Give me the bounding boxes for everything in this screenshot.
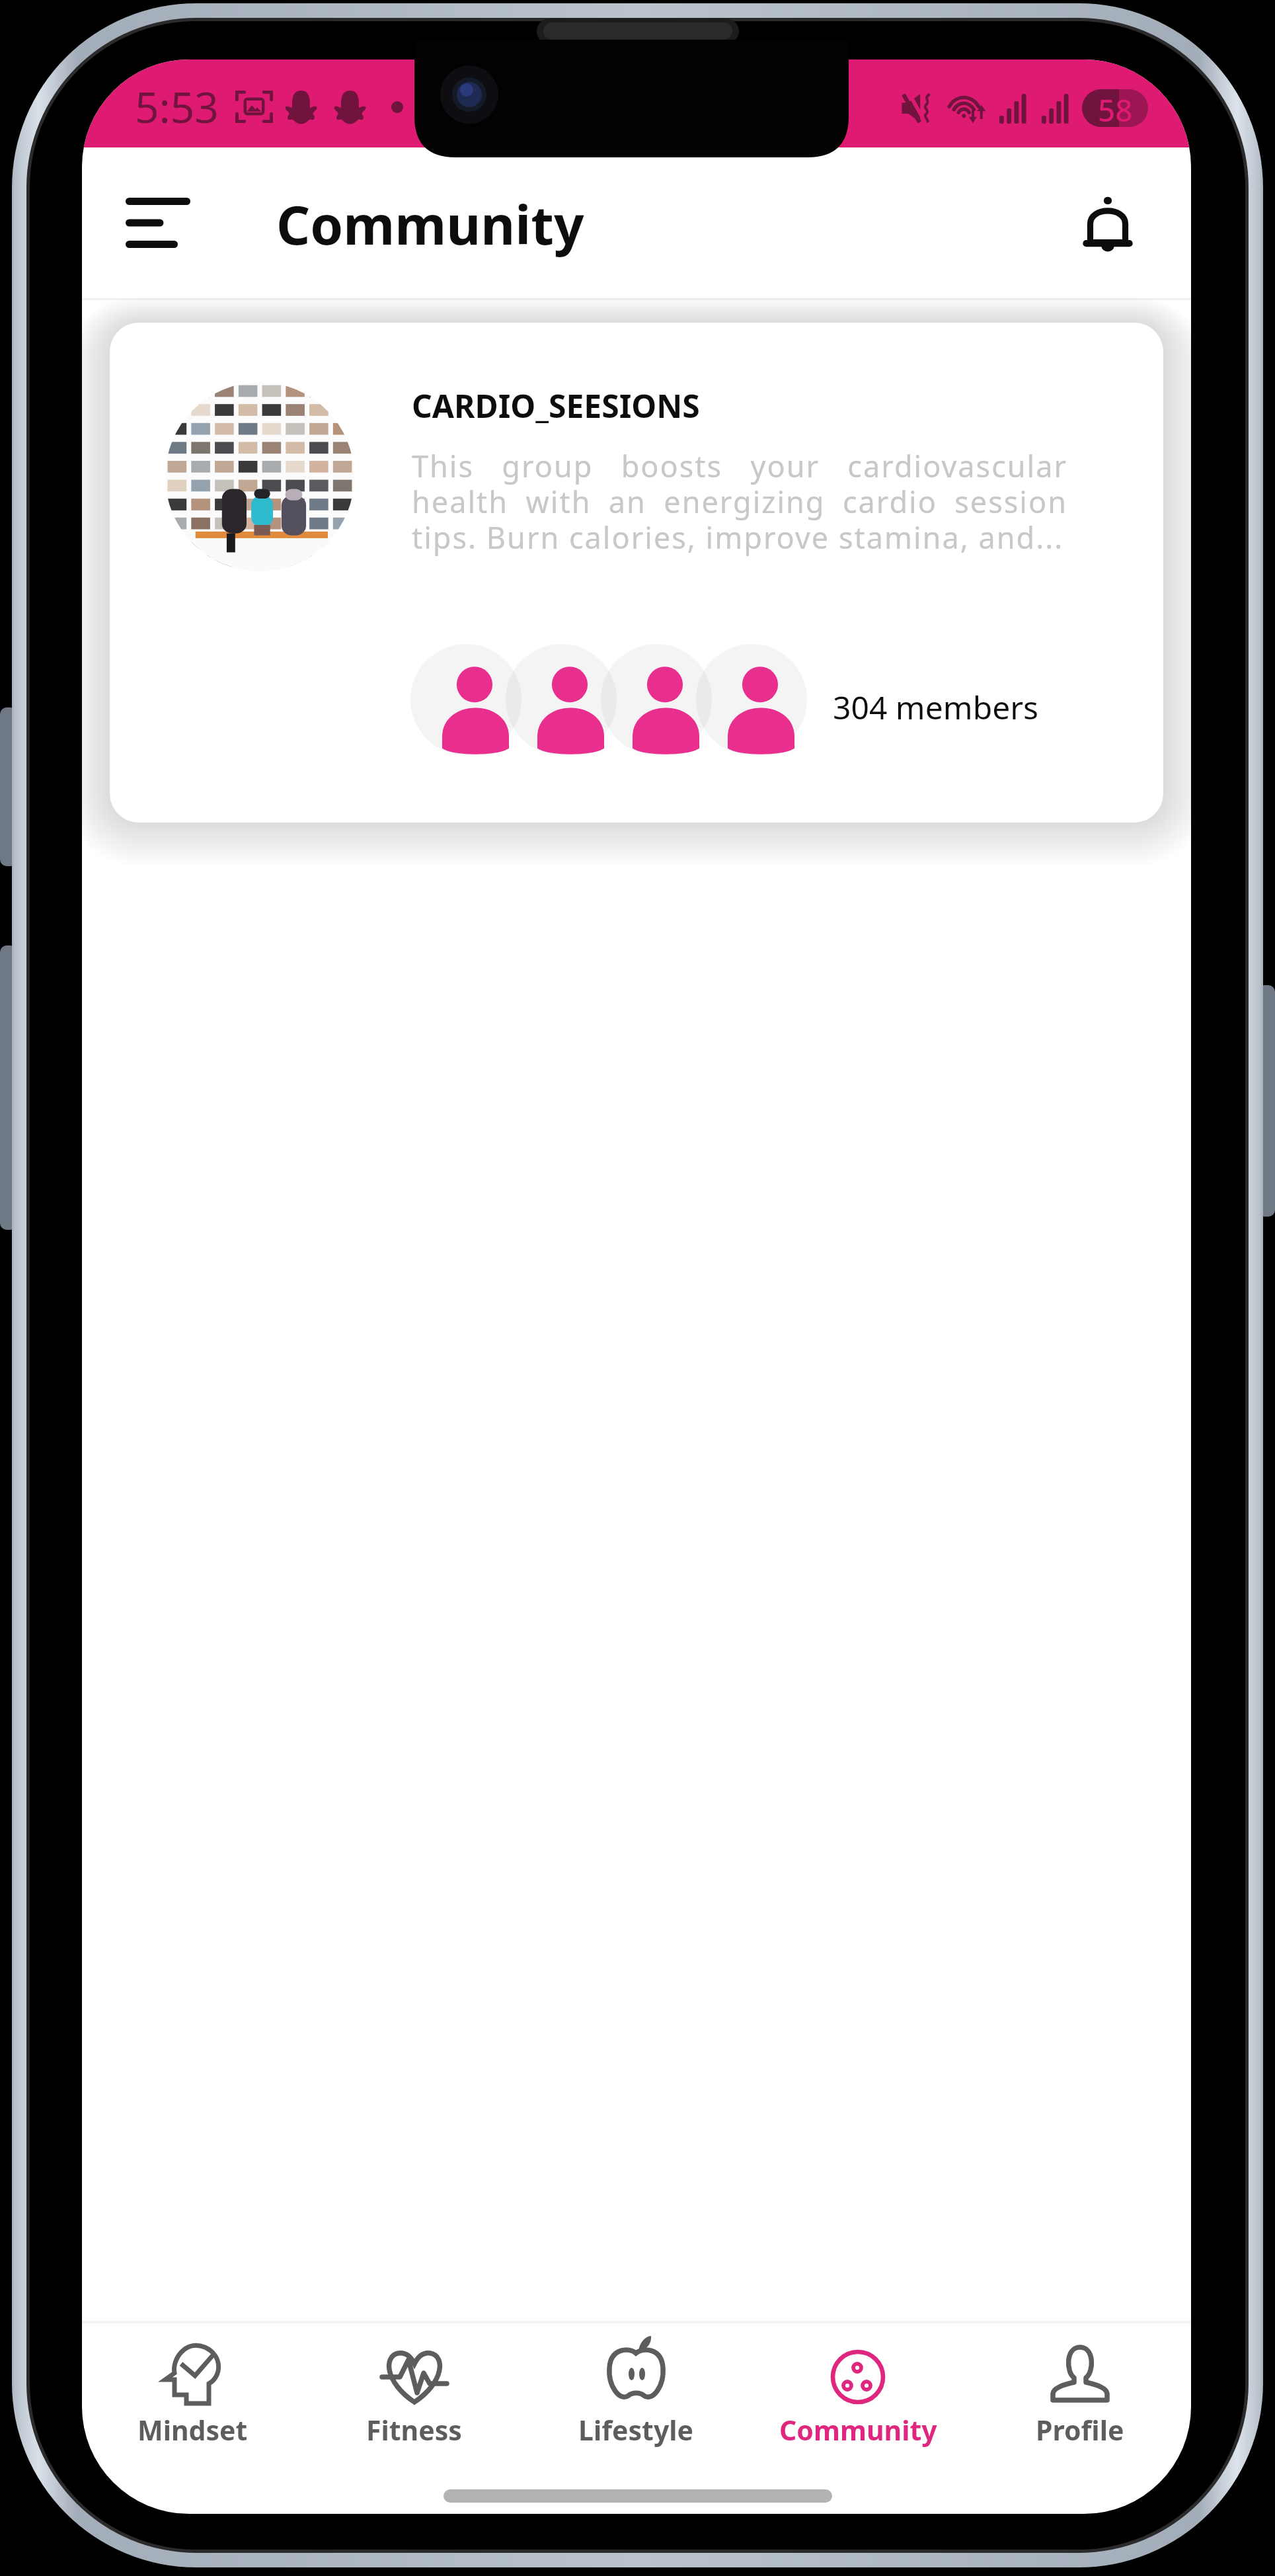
button[interactable]: Menu xyxy=(112,181,204,265)
button[interactable]: Fitness xyxy=(303,2323,525,2514)
staticText: 5:53 xyxy=(135,78,219,136)
staticText: Fitness xyxy=(366,2411,462,2448)
staticText: This group boosts your cardiovascular he… xyxy=(412,446,1067,558)
staticText: Community xyxy=(276,188,584,260)
staticText: 58 xyxy=(1098,89,1133,127)
button[interactable] xyxy=(110,323,1163,823)
button[interactable]: Mindset xyxy=(82,2323,303,2514)
staticText: Community xyxy=(779,2411,937,2448)
staticText: 304 members xyxy=(833,686,1039,729)
staticText: Profile xyxy=(1036,2411,1124,2448)
button[interactable]: Profile xyxy=(969,2323,1191,2514)
button[interactable]: Notifications xyxy=(1066,181,1149,264)
button[interactable]: Lifestyle xyxy=(525,2323,747,2514)
staticText: Lifestyle xyxy=(578,2411,694,2448)
button[interactable]: Community xyxy=(747,2323,969,2514)
staticText: Mindset xyxy=(137,2411,248,2448)
staticText: CARDIO_SEESIONS xyxy=(412,384,700,427)
